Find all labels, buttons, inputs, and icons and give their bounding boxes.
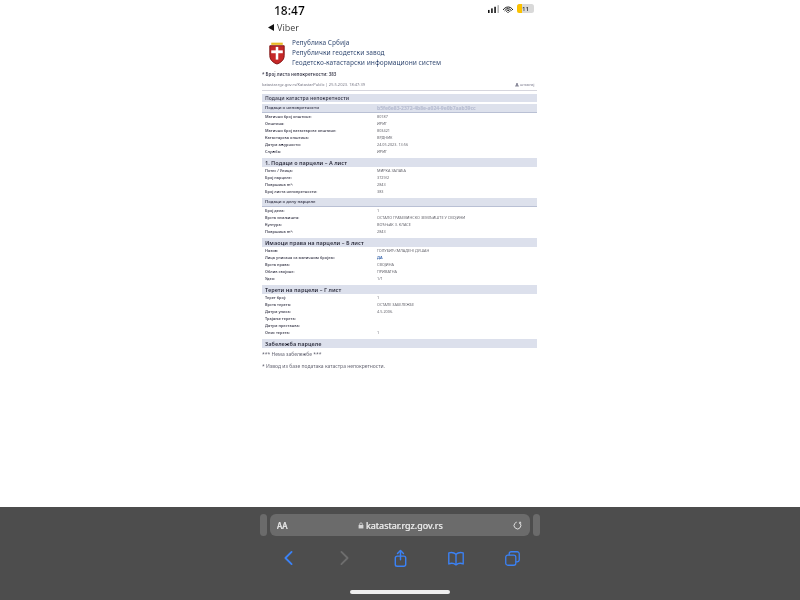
- staticText: Површина m²:: [265, 182, 377, 187]
- staticText: ОСТАЛО ГРАЂЕВИНСКО ЗЕМЉИШТЕ У СВОЈИНИ: [377, 215, 537, 220]
- staticText: Трајање терета:: [265, 316, 377, 321]
- staticText: Имаоци права на парцели – Б лист: [265, 239, 364, 246]
- button[interactable]: Forward: [316, 544, 372, 572]
- staticText: 803421: [377, 128, 537, 133]
- staticText: 1: [377, 208, 537, 213]
- staticText: 1. Подаци о парцели – А лист: [265, 159, 347, 166]
- staticText: СВОЈИНА: [377, 262, 537, 267]
- staticText: Општина:: [265, 121, 377, 126]
- button[interactable]: Back: [260, 544, 316, 572]
- button[interactable]: Reload: [512, 520, 523, 531]
- staticText: katastar.rgz.gov.rs: [366, 519, 443, 531]
- staticText: 80187: [377, 114, 537, 119]
- staticText: Геодетско-катастарски информациони систе…: [292, 58, 442, 67]
- staticText: Подаци о непокретности: [265, 105, 377, 111]
- staticText: Потес / Улица:: [265, 168, 377, 173]
- staticText: ИРИГ: [377, 121, 537, 126]
- staticText: Број дела:: [265, 208, 377, 213]
- staticText: Служба:: [265, 149, 377, 154]
- staticText: 3729/2: [377, 175, 537, 180]
- staticText: Врста земљишта:: [265, 215, 377, 220]
- staticText: Број листа непокретности:: [265, 189, 377, 194]
- staticText: Матични број катастарске општине:: [265, 128, 377, 133]
- staticText: Катастарска општина:: [265, 135, 377, 140]
- staticText: b5fe6e83-2372-4b8e-a024-9e0b7aab39cc: [377, 105, 537, 112]
- button[interactable]: Next tab: [533, 514, 540, 536]
- staticText: ОСТАЛЕ ЗАБЕЛЕЖБЕ: [377, 302, 537, 307]
- staticText: Облик својине:: [265, 269, 377, 274]
- staticText: Назив:: [265, 248, 377, 253]
- staticText: Лица уписана са матичним бројем:: [265, 255, 377, 260]
- staticText: 1: [377, 330, 537, 335]
- staticText: ПРИВАТНА: [377, 269, 537, 274]
- staticText: Врста права:: [265, 262, 377, 267]
- staticText: 1: [377, 295, 537, 300]
- staticText: ИРИГ: [377, 149, 537, 154]
- staticText: Датум престанка:: [265, 323, 377, 328]
- staticText: Површина m²:: [265, 229, 377, 234]
- staticText: штампај: [520, 82, 535, 87]
- staticText: Култура:: [265, 222, 377, 227]
- button[interactable]: Previous tab: [260, 514, 267, 536]
- staticText: МИРКА ЗАЛАЂА: [377, 168, 537, 173]
- staticText: Број парцеле:: [265, 175, 377, 180]
- staticText: Републички геодетски завод: [292, 48, 385, 57]
- staticText: 18:47: [274, 2, 305, 18]
- staticText: ВОЋЊАК 3. КЛАСЕ: [377, 222, 537, 227]
- staticText: Viber: [277, 21, 300, 33]
- staticText: Забележба парцеле: [265, 340, 322, 347]
- staticText: * Извод из базе података катастра непокр…: [262, 363, 386, 370]
- staticText: 1/1: [377, 276, 537, 281]
- staticText: 2843: [377, 182, 537, 187]
- button[interactable]: штампај: [513, 80, 537, 89]
- staticText: Датум ажурности:: [265, 142, 377, 147]
- staticText: *** Нема забележбе ***: [262, 351, 322, 358]
- button[interactable]: Bookmarks: [428, 544, 484, 572]
- staticText: ДА: [377, 255, 537, 260]
- staticText: Подаци катастра непокретности: [265, 95, 350, 102]
- staticText: Датум уписа:: [265, 309, 377, 314]
- staticText: * Број листа непокретности: 383: [262, 71, 337, 77]
- staticText: Опис терета:: [265, 330, 377, 335]
- staticText: 24.05.2023. 13:56: [377, 142, 537, 147]
- staticText: Република Србија: [292, 38, 350, 47]
- staticText: 2843: [377, 229, 537, 234]
- staticText: Удео:: [265, 276, 377, 281]
- staticText: ВРДНИК: [377, 135, 537, 140]
- staticText: Матични број општине:: [265, 114, 377, 119]
- staticText: 11: [522, 5, 529, 13]
- staticText: Подаци о делу парцеле: [265, 199, 316, 205]
- button[interactable]: Tabs: [484, 544, 540, 572]
- staticText: 383: [377, 189, 537, 194]
- button[interactable]: Viber: [262, 20, 304, 34]
- button[interactable]: Share: [372, 544, 428, 572]
- staticText: Врста терета:: [265, 302, 377, 307]
- staticText: Терет број:: [265, 295, 377, 300]
- button[interactable]: AA: [270, 514, 530, 536]
- staticText: ГОЛУБИЋ (МЛАДЕН) ДУШАН: [377, 248, 537, 253]
- staticText: AA: [277, 520, 288, 531]
- staticText: Терети на парцели – Г лист: [265, 286, 342, 293]
- staticText: katastar.rgz.gov.rs/KatastarPublic | 25.…: [262, 82, 366, 87]
- staticText: 4.5.2006.: [377, 309, 537, 314]
